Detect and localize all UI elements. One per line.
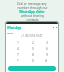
button[interactable]: 7 <box>14 51 21 57</box>
button[interactable]: Call <box>8 66 56 71</box>
staticText: 6 <box>46 46 48 51</box>
staticText: number through our <box>17 6 48 10</box>
staticText: # <box>45 58 48 63</box>
staticText: 3 <box>46 40 48 45</box>
staticText: 8 <box>32 52 34 57</box>
staticText: 7 <box>17 52 19 57</box>
staticText: 9 <box>46 52 48 57</box>
staticText: 4 <box>17 46 19 51</box>
button[interactable]: 4 <box>14 45 21 51</box>
button[interactable]: 6 <box>43 45 50 51</box>
staticText: WhatsApp dialer <box>19 10 45 14</box>
staticText: dialer <box>7 31 14 34</box>
button[interactable]: 0 <box>29 57 36 63</box>
button[interactable]: 3 <box>43 39 50 45</box>
button[interactable]: 9 <box>43 51 50 57</box>
button[interactable]: * <box>14 57 21 63</box>
button[interactable]: 5 <box>29 45 36 51</box>
staticText: Dial or message any <box>17 2 47 6</box>
button[interactable]: 1 <box>14 39 21 45</box>
staticText: 1 <box>17 40 19 45</box>
button[interactable]: 8 <box>29 51 36 57</box>
staticText: * <box>17 58 19 63</box>
staticText: WhatsApp <box>7 26 22 30</box>
staticText: +1 202 555 0147 <box>21 34 43 38</box>
staticText: 2 <box>32 40 34 45</box>
staticText: 5 <box>32 46 34 51</box>
staticText: 0 <box>32 58 34 63</box>
button[interactable]: 2 <box>29 39 36 45</box>
staticText: without sharing <box>21 14 44 18</box>
button[interactable]: # <box>43 57 50 63</box>
staticText: contacts <box>26 18 39 22</box>
